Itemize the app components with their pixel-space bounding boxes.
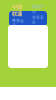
staticText: 权益中心 <box>32 4 44 14</box>
staticText: 尊享会员 <box>12 18 24 28</box>
staticText: 中国联通 <box>12 4 22 17</box>
staticText: 查看更多 <box>32 15 44 25</box>
